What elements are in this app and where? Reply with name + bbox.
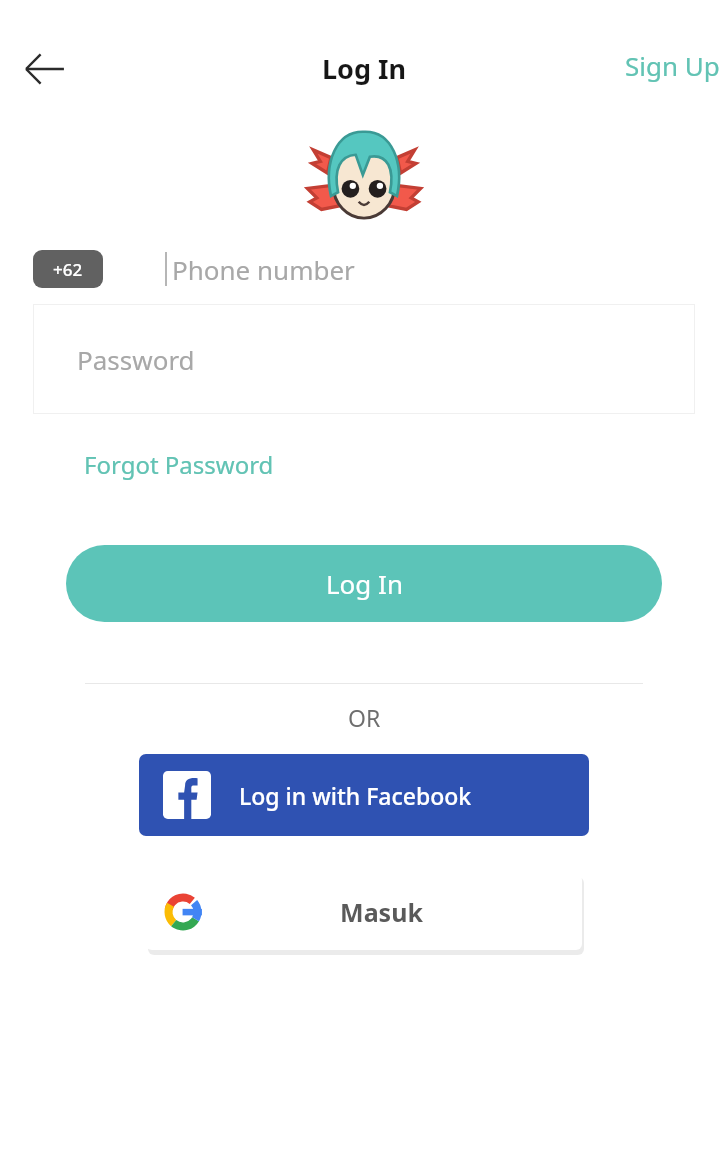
staticText: Log in with Facebook bbox=[239, 780, 472, 811]
staticText: Masuk bbox=[340, 895, 423, 929]
button[interactable]: Log in with Facebook bbox=[139, 754, 589, 836]
staticText: Forgot Password bbox=[84, 448, 274, 481]
staticText: Password bbox=[77, 342, 195, 377]
staticText: Sign Up bbox=[625, 48, 720, 83]
button[interactable]: Log In bbox=[66, 545, 662, 622]
staticText: Log In bbox=[322, 50, 407, 87]
staticText: OR bbox=[348, 702, 381, 733]
staticText: Log In bbox=[326, 566, 403, 601]
staticText: Phone number bbox=[172, 252, 355, 287]
button[interactable]: Forgot Password bbox=[70, 440, 288, 489]
button[interactable]: Sign Up bbox=[615, 40, 728, 91]
button[interactable]: Password bbox=[33, 304, 695, 414]
button[interactable]: Masuk bbox=[146, 874, 582, 950]
button[interactable]: Back bbox=[14, 38, 76, 100]
staticText: +62 bbox=[53, 258, 83, 281]
button[interactable]: +62 bbox=[0, 234, 728, 304]
button[interactable]: +62 bbox=[33, 250, 103, 288]
